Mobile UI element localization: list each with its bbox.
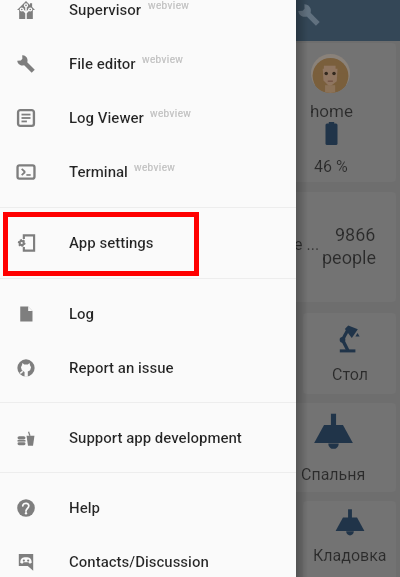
staticText: people (322, 247, 376, 268)
button[interactable]: Report an issue (0, 341, 296, 395)
staticText: Стол (332, 365, 369, 384)
button[interactable]: File editor (0, 37, 296, 91)
staticText: Help (69, 499, 100, 517)
button[interactable]: e ... (5, 192, 396, 302)
button[interactable]: Settings (296, 2, 322, 28)
staticText: Спальня (301, 465, 366, 484)
staticText: webview (142, 54, 184, 66)
button[interactable] (303, 501, 396, 577)
button[interactable]: Contacts/Discussion (0, 535, 296, 577)
staticText: App settings (69, 234, 154, 252)
staticText: Log Viewer (69, 109, 144, 127)
staticText: e ... (294, 235, 320, 254)
button[interactable]: App settings (0, 216, 296, 270)
staticText: Report an issue (69, 359, 174, 377)
button[interactable]: Supervisor (0, 0, 296, 37)
staticText: home (310, 101, 353, 121)
button[interactable] (272, 403, 396, 492)
staticText: Кладовка (313, 546, 387, 565)
staticText: webview (134, 162, 176, 174)
staticText: Contacts/Discussion (69, 553, 209, 571)
button[interactable]: Support app development (0, 411, 296, 465)
button[interactable]: Log (0, 287, 296, 341)
staticText: Terminal (69, 163, 128, 181)
staticText: Log (69, 305, 95, 323)
staticText: webview (148, 0, 190, 12)
staticText: webview (150, 108, 192, 120)
staticText: 9866 (335, 224, 376, 245)
staticText: Supervisor (69, 1, 142, 19)
button[interactable]: Log Viewer (0, 91, 296, 145)
button[interactable] (303, 313, 396, 394)
button[interactable]: Help (0, 481, 296, 535)
staticText: File editor (69, 55, 136, 73)
staticText: 46 % (314, 157, 348, 176)
staticText: Support app development (69, 429, 242, 447)
button[interactable]: Terminal (0, 145, 296, 199)
button[interactable]: home (5, 43, 396, 182)
